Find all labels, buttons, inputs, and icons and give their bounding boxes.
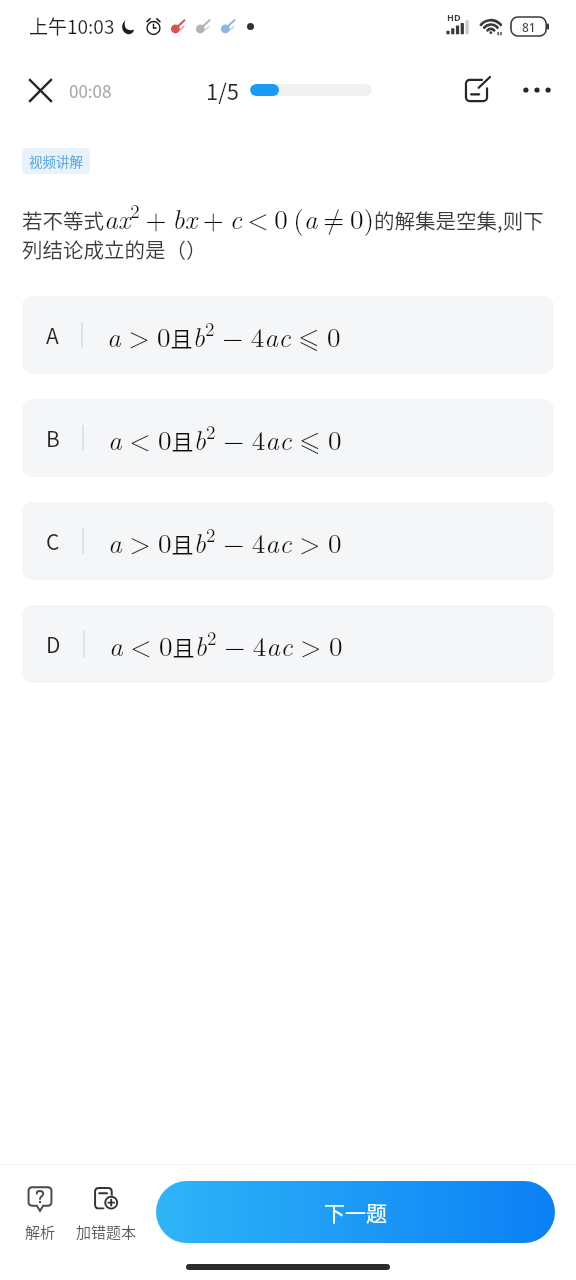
button[interactable]: More options bbox=[515, 68, 559, 112]
button[interactable]: A bbox=[22, 296, 554, 374]
staticText: 81 bbox=[522, 19, 536, 35]
button[interactable]: Close bbox=[18, 68, 62, 112]
staticText: a < 0且b2 − 4ac ⩽ 0 bbox=[108, 418, 342, 458]
staticText: a < 0且b2 − 4ac > 0 bbox=[109, 624, 343, 664]
staticText: B bbox=[46, 423, 60, 453]
button[interactable]: B bbox=[22, 399, 554, 477]
staticText: 下一题 bbox=[324, 1197, 387, 1227]
staticText: D bbox=[46, 629, 61, 659]
staticText: a > 0且b2 − 4ac > 0 bbox=[108, 521, 342, 561]
staticText: 解析 bbox=[25, 1221, 56, 1243]
staticText: 上午10:03 bbox=[29, 12, 115, 40]
staticText: 1/5 bbox=[206, 74, 240, 106]
button[interactable]: 加错题本 bbox=[72, 1186, 140, 1243]
button[interactable]: 解析 bbox=[6, 1186, 74, 1243]
button[interactable]: 视频讲解 bbox=[22, 148, 90, 174]
staticText: 加错题本 bbox=[76, 1221, 137, 1243]
staticText: 00:08 bbox=[69, 78, 112, 103]
button[interactable]: D bbox=[22, 605, 554, 683]
button[interactable]: Notes bbox=[453, 67, 499, 113]
staticText: 视频讲解 bbox=[29, 151, 83, 171]
staticText: a > 0且b2 − 4ac ⩽ 0 bbox=[107, 315, 341, 355]
button[interactable]: 下一题 bbox=[156, 1181, 555, 1243]
staticText: A bbox=[46, 320, 59, 350]
staticText: HD bbox=[447, 11, 461, 23]
staticText: 若不等式ax2 + bx + c < 0 (a ≠ 0)的解集是空集,则下列结论… bbox=[22, 197, 555, 264]
button[interactable]: C bbox=[22, 502, 554, 580]
staticText: C bbox=[46, 526, 60, 556]
